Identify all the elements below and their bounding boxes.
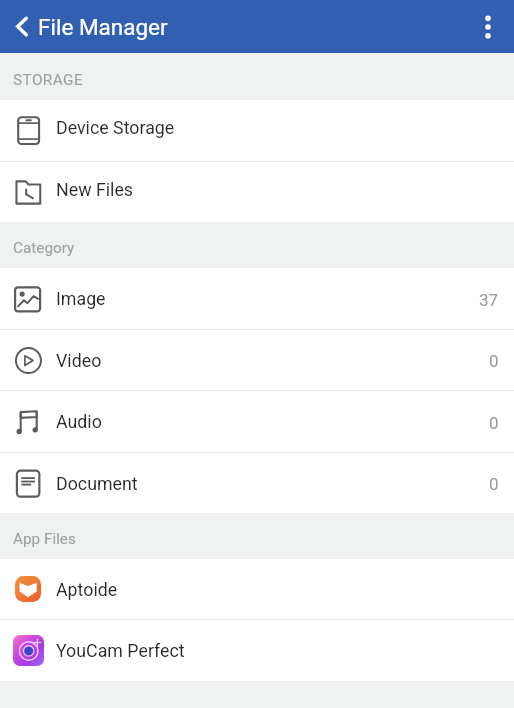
- staticText: App Files: [13, 530, 76, 548]
- staticText: New Files: [56, 179, 134, 200]
- button[interactable]: Video: [0, 330, 514, 390]
- staticText: YouCam Perfect: [56, 640, 185, 661]
- staticText: Category: [13, 239, 75, 257]
- button[interactable]: YouCam Perfect: [0, 620, 514, 681]
- button[interactable]: Document: [0, 453, 514, 513]
- staticText: Aptoide: [56, 579, 118, 600]
- button[interactable]: Image: [0, 268, 514, 329]
- staticText: Document: [56, 473, 138, 494]
- staticText: 0: [489, 413, 499, 433]
- staticText: STORAGE: [13, 71, 84, 89]
- staticText: 0: [489, 474, 499, 494]
- button[interactable]: New Files: [0, 162, 514, 222]
- staticText: Audio: [56, 411, 102, 432]
- staticText: Video: [56, 350, 102, 371]
- button[interactable]: Back: [0, 5, 44, 49]
- button[interactable]: Aptoide: [0, 559, 514, 619]
- staticText: Image: [56, 288, 106, 309]
- button[interactable]: Device Storage: [0, 100, 514, 161]
- staticText: File Manager: [38, 14, 168, 40]
- staticText: 0: [489, 351, 499, 371]
- staticText: 37: [479, 290, 499, 310]
- staticText: Device Storage: [56, 117, 175, 138]
- button[interactable]: Audio: [0, 391, 514, 452]
- button[interactable]: More options: [466, 0, 514, 53]
